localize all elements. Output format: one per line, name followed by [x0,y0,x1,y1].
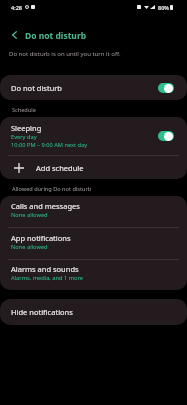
staticText: Add schedule [36,163,84,173]
button[interactable]: Do not disturb switch [158,83,174,93]
staticText: Do not disturb [25,30,87,42]
staticText: None allowed [11,243,48,251]
staticText: Schedule [12,106,36,114]
button[interactable]: Sleeping schedule switch [158,131,174,141]
staticText: Hide notifications [11,307,73,317]
button[interactable]: Navigate up [5,26,23,44]
button[interactable]: Hide notifications [0,299,187,325]
staticText: Alarms and sounds [11,264,79,274]
staticText: 10:00 PM – 9:00 AM next day [11,141,88,149]
staticText: None allowed [11,211,48,219]
button[interactable]: Do not disturb [0,75,187,100]
staticText: Every day [11,133,37,141]
staticText: Alarms, media, and 1 more [11,274,83,282]
staticText: Calls and messages [11,201,80,211]
staticText: 4:28 [11,4,22,11]
staticText: 80% [158,4,169,11]
button[interactable]: App notifications [0,228,187,259]
staticText: Do not disturb [11,83,62,93]
staticText: Sleeping [11,123,42,133]
staticText: Do not disturb is on until you turn it o… [9,50,121,58]
button[interactable]: Sleeping [0,117,187,155]
staticText: App notifications [11,233,71,243]
button[interactable]: Add schedule [0,156,187,179]
staticText: Allowed during Do not disturb [12,185,92,193]
button[interactable]: Calls and messages [0,196,187,227]
button[interactable]: Alarms and sounds [0,260,187,290]
